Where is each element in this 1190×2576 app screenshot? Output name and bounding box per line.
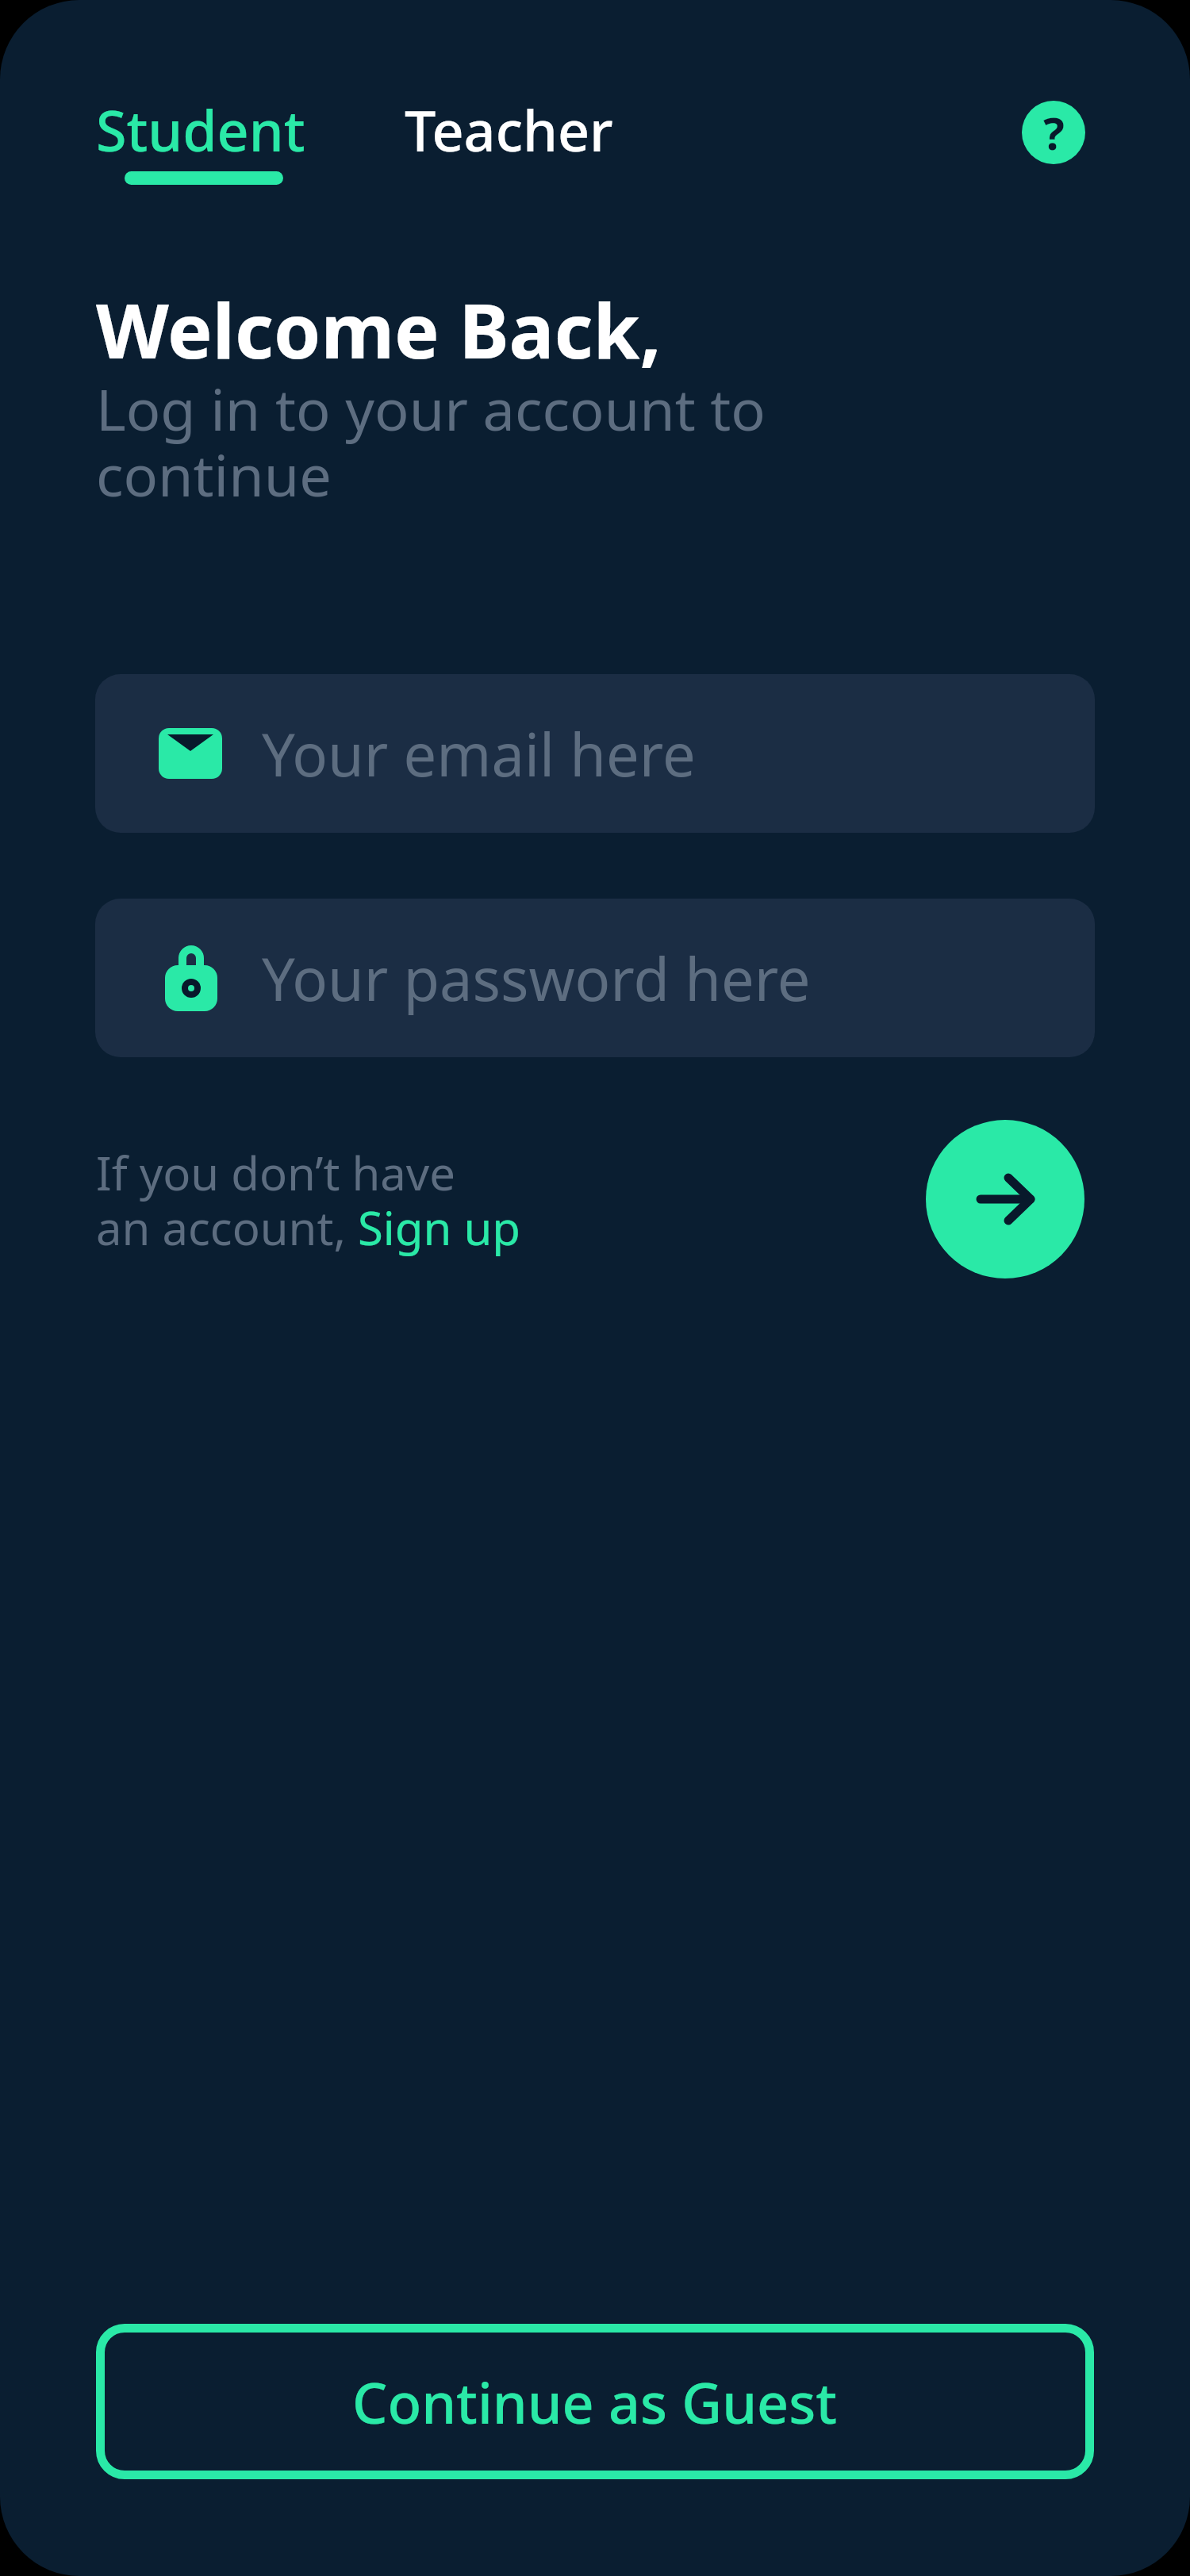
button[interactable]: ? — [1022, 101, 1085, 164]
staticText: Welcome Back, — [96, 278, 662, 380]
staticText: Continue as Guest — [352, 2364, 838, 2440]
staticText: continue — [96, 435, 332, 513]
button[interactable] — [926, 1120, 1084, 1278]
staticText: Teacher — [405, 92, 613, 167]
staticText: an account, Sign up — [96, 1196, 520, 1259]
staticText: Student — [96, 92, 305, 167]
staticText: Log in to your account to — [96, 370, 766, 447]
button[interactable]: an account, Sign up — [96, 1196, 520, 1259]
staticText: If you don’t have — [96, 1141, 456, 1204]
button[interactable]: Continue as Guest — [96, 2324, 1094, 2479]
button[interactable]: Teacher — [405, 92, 613, 167]
staticText: Your email here — [262, 714, 696, 794]
button[interactable]: Your password here — [95, 899, 1095, 1057]
staticText: ? — [1043, 102, 1065, 163]
button[interactable]: Your email here — [95, 674, 1095, 833]
staticText: Your password here — [262, 938, 811, 1018]
button[interactable]: Student — [96, 92, 305, 167]
